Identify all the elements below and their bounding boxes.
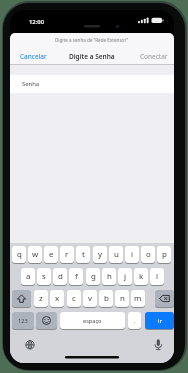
button[interactable]: e <box>44 246 58 263</box>
button[interactable]: h <box>102 268 116 285</box>
staticText: i <box>131 249 134 260</box>
button[interactable]: i <box>125 246 139 263</box>
staticText: k <box>139 271 144 282</box>
button[interactable]: v <box>83 290 97 307</box>
staticText: z <box>39 293 43 304</box>
button[interactable]: m <box>131 290 145 307</box>
staticText: c <box>72 293 76 304</box>
button[interactable]: Cancelar <box>20 49 68 63</box>
staticText: t <box>82 249 85 260</box>
staticText: p <box>162 249 167 260</box>
staticText: Senha <box>22 80 40 88</box>
button[interactable]: espaço <box>60 312 125 329</box>
button[interactable]: t <box>76 246 90 263</box>
staticText: y <box>98 249 103 260</box>
button[interactable]: r <box>60 246 74 263</box>
button[interactable]: u <box>109 246 123 263</box>
staticText: . <box>134 317 136 325</box>
button[interactable]: f <box>69 268 83 285</box>
button[interactable] <box>155 290 174 307</box>
staticText: m <box>134 293 142 304</box>
staticText: Digite a senha de “Rede Extensor” <box>55 37 129 43</box>
staticText: Cancelar <box>20 52 47 61</box>
staticText: o <box>146 249 151 260</box>
button[interactable]: q <box>12 246 26 263</box>
button[interactable]: o <box>141 246 155 263</box>
staticText: e <box>49 249 54 260</box>
button[interactable]: c <box>67 290 81 307</box>
button[interactable]: ir <box>145 312 174 329</box>
button[interactable]: . <box>128 312 141 329</box>
staticText: x <box>55 293 60 304</box>
staticText: g <box>91 271 96 282</box>
button[interactable]: w <box>28 246 42 263</box>
button[interactable]: d <box>53 268 67 285</box>
button[interactable]: y <box>93 246 107 263</box>
button[interactable]: Senha <box>10 75 174 93</box>
staticText: n <box>120 293 125 304</box>
staticText: b <box>104 293 109 304</box>
staticText: h <box>107 271 112 282</box>
staticText: espaço <box>83 317 102 325</box>
staticText: r <box>65 249 69 260</box>
button[interactable]: 123 <box>12 312 34 329</box>
button[interactable]: p <box>157 246 171 263</box>
staticText: s <box>42 271 46 282</box>
staticText: j <box>124 271 127 282</box>
staticText: q <box>17 249 22 260</box>
button[interactable] <box>36 312 57 329</box>
button[interactable]: Conectar <box>118 49 168 63</box>
staticText: 12:00 <box>29 18 45 26</box>
button[interactable]: z <box>34 290 48 307</box>
staticText: w <box>32 249 39 260</box>
button[interactable]: x <box>50 290 64 307</box>
staticText: u <box>114 249 119 260</box>
button[interactable]: s <box>37 268 51 285</box>
staticText: Conectar <box>140 52 168 61</box>
button[interactable]: n <box>115 290 129 307</box>
staticText: l <box>156 271 159 282</box>
button[interactable]: b <box>99 290 113 307</box>
button[interactable]: k <box>134 268 148 285</box>
button[interactable]: l <box>150 268 164 285</box>
staticText: d <box>58 271 63 282</box>
button[interactable] <box>12 290 31 307</box>
staticText: ir <box>158 317 162 325</box>
staticText: v <box>88 293 93 304</box>
button[interactable]: j <box>118 268 132 285</box>
staticText: f <box>75 271 78 282</box>
staticText: Digite a Senha <box>69 52 115 61</box>
button[interactable]: g <box>86 268 100 285</box>
staticText: a <box>26 271 31 282</box>
button[interactable]: a <box>21 268 35 285</box>
staticText: 123 <box>18 317 28 325</box>
